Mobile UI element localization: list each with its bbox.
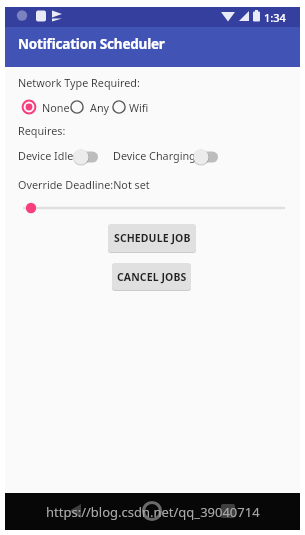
staticText: 1:34: [264, 10, 286, 25]
staticText: Wifi: [129, 100, 149, 115]
staticText: Override Deadline:Not set: [18, 177, 150, 192]
button[interactable]: [193, 148, 219, 166]
staticText: SCHEDULE JOB: [114, 231, 191, 245]
staticText: CANCEL JOBS: [117, 270, 187, 284]
button[interactable]: [15, 198, 290, 218]
staticText: None: [42, 100, 70, 115]
staticText: Requires:: [18, 123, 66, 138]
button[interactable]: [21, 99, 37, 115]
staticText: Device Charging: [113, 148, 196, 163]
button[interactable]: [69, 99, 85, 115]
staticText: Notification Scheduler: [18, 35, 165, 53]
button[interactable]: CANCEL JOBS: [112, 263, 191, 290]
staticText: Network Type Required:: [18, 75, 140, 90]
staticText: Any: [90, 100, 110, 115]
staticText: https://blog.csdn.net/qq_39040714: [46, 503, 260, 521]
button[interactable]: SCHEDULE JOB: [108, 224, 196, 252]
button[interactable]: Notification Scheduler: [5, 27, 300, 67]
button[interactable]: [73, 148, 99, 166]
staticText: Device Idle: [18, 148, 74, 163]
button[interactable]: [111, 99, 127, 115]
